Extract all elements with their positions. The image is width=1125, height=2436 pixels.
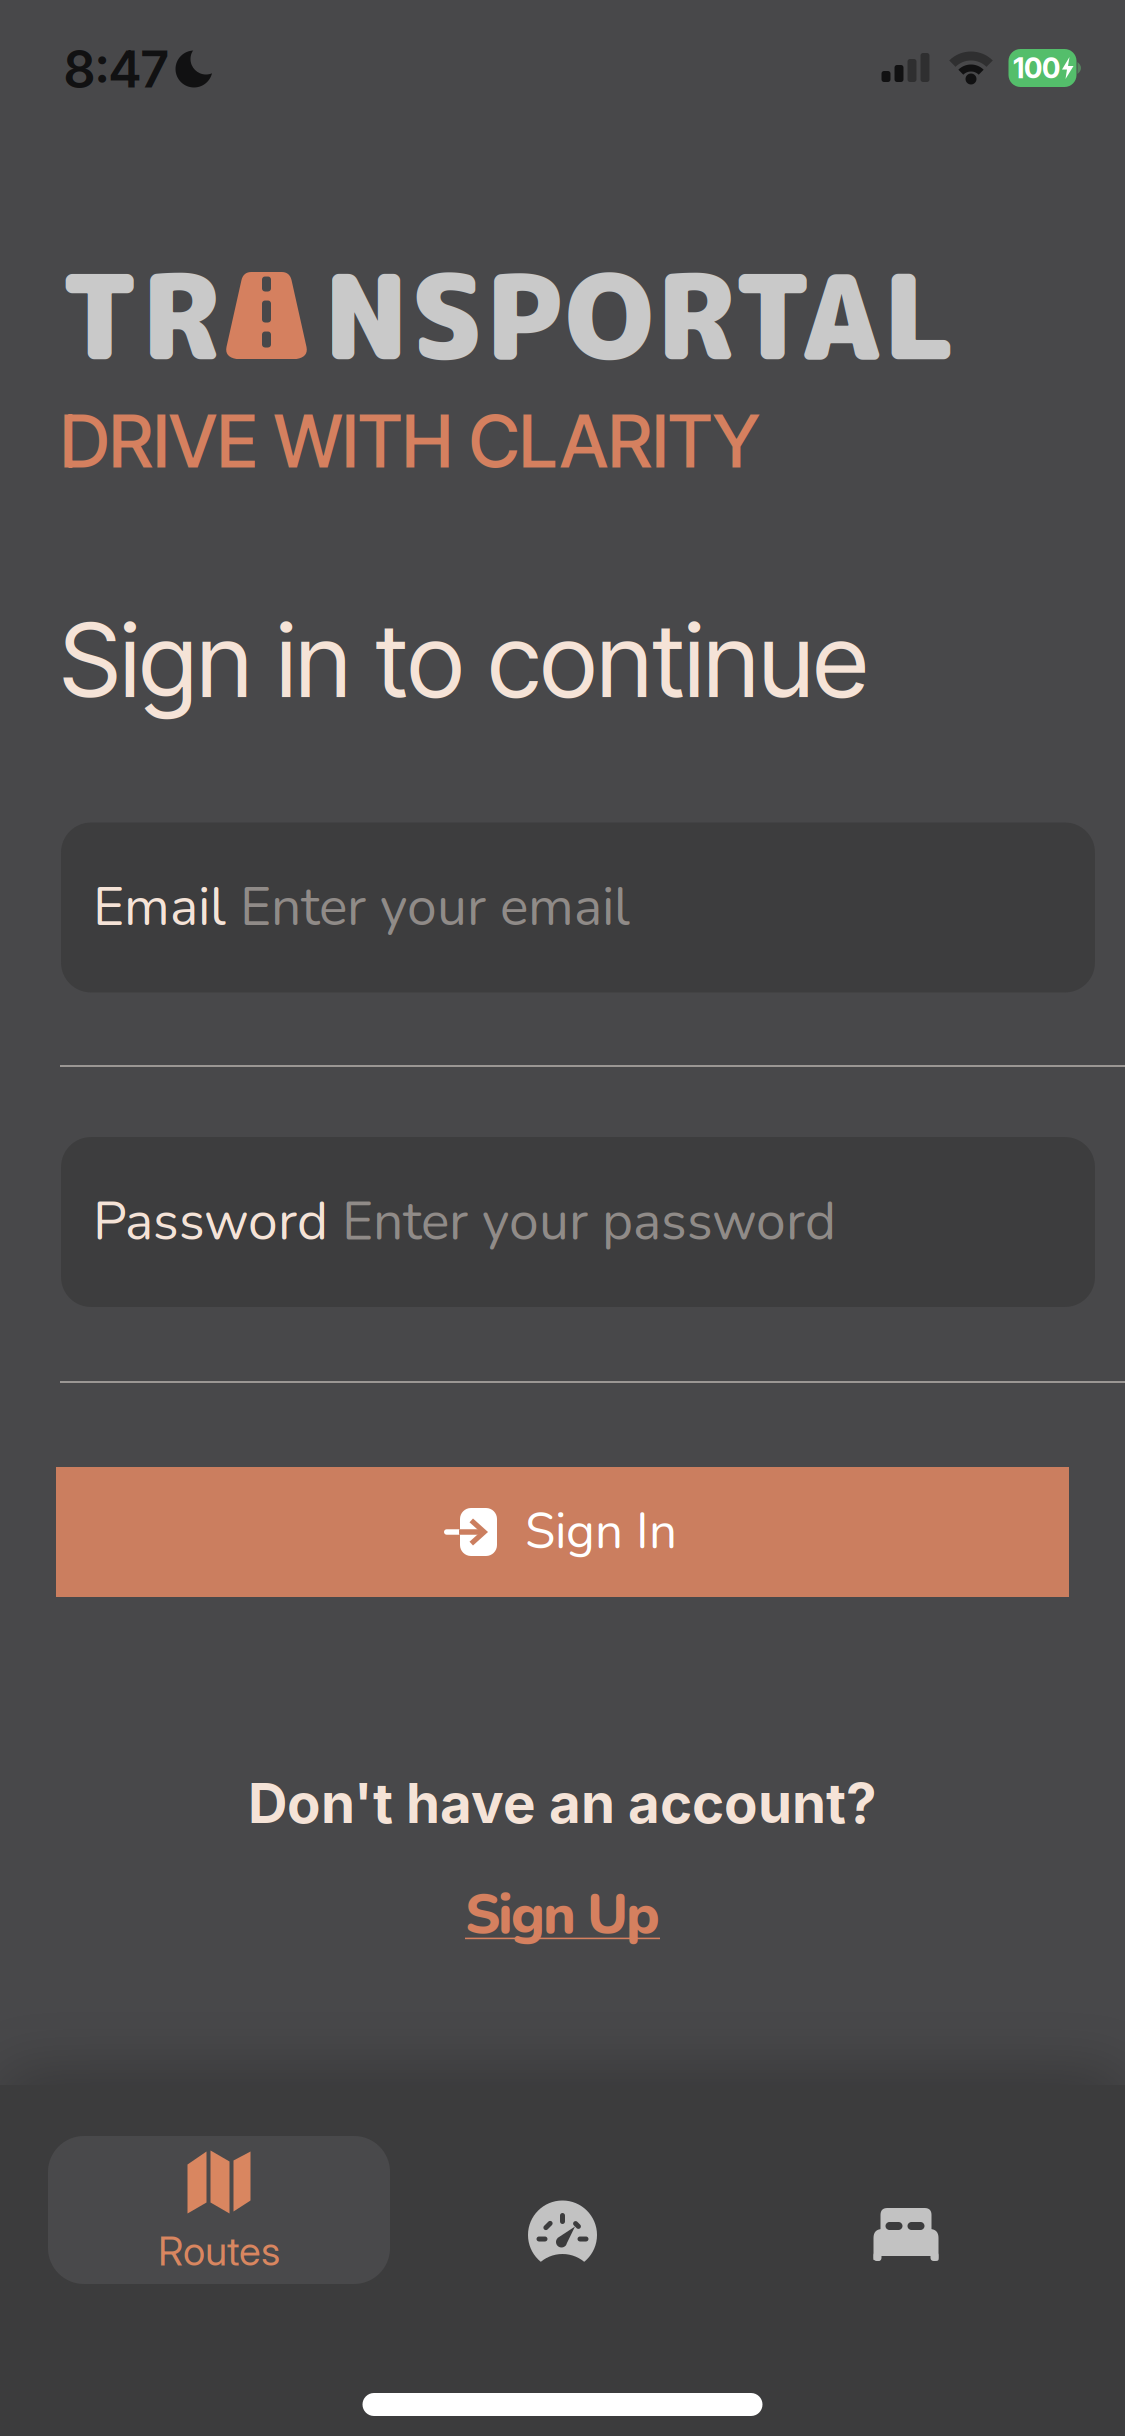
staticText: Enter your email — [240, 871, 630, 944]
button[interactable]: Routes — [48, 2136, 390, 2284]
staticText: Password — [93, 1186, 328, 1258]
staticText: TR — [60, 233, 219, 397]
button[interactable]: Sign In — [56, 1467, 1069, 1597]
staticText: Sign Up — [465, 1877, 660, 1953]
button[interactable]: Speed — [391, 2136, 733, 2284]
staticText: NSPORTAL — [323, 233, 956, 397]
staticText: Don't have an account? — [248, 1770, 877, 1836]
staticText: Sign In — [525, 1498, 677, 1566]
button[interactable]: Rest — [735, 2136, 1077, 2284]
staticText: Routes — [158, 2227, 280, 2275]
staticText: Sign in to continue — [60, 599, 867, 721]
staticText: Enter your password — [342, 1186, 836, 1258]
staticText: 8:47 — [64, 38, 168, 100]
button[interactable]: Password — [61, 1137, 1095, 1307]
staticText: 100 — [1013, 51, 1060, 85]
button[interactable]: Sign Up — [465, 1877, 660, 1953]
staticText: Email — [93, 871, 226, 944]
button[interactable]: Email — [61, 822, 1095, 992]
staticText: DRIVE WITH CLARITY — [60, 397, 760, 485]
